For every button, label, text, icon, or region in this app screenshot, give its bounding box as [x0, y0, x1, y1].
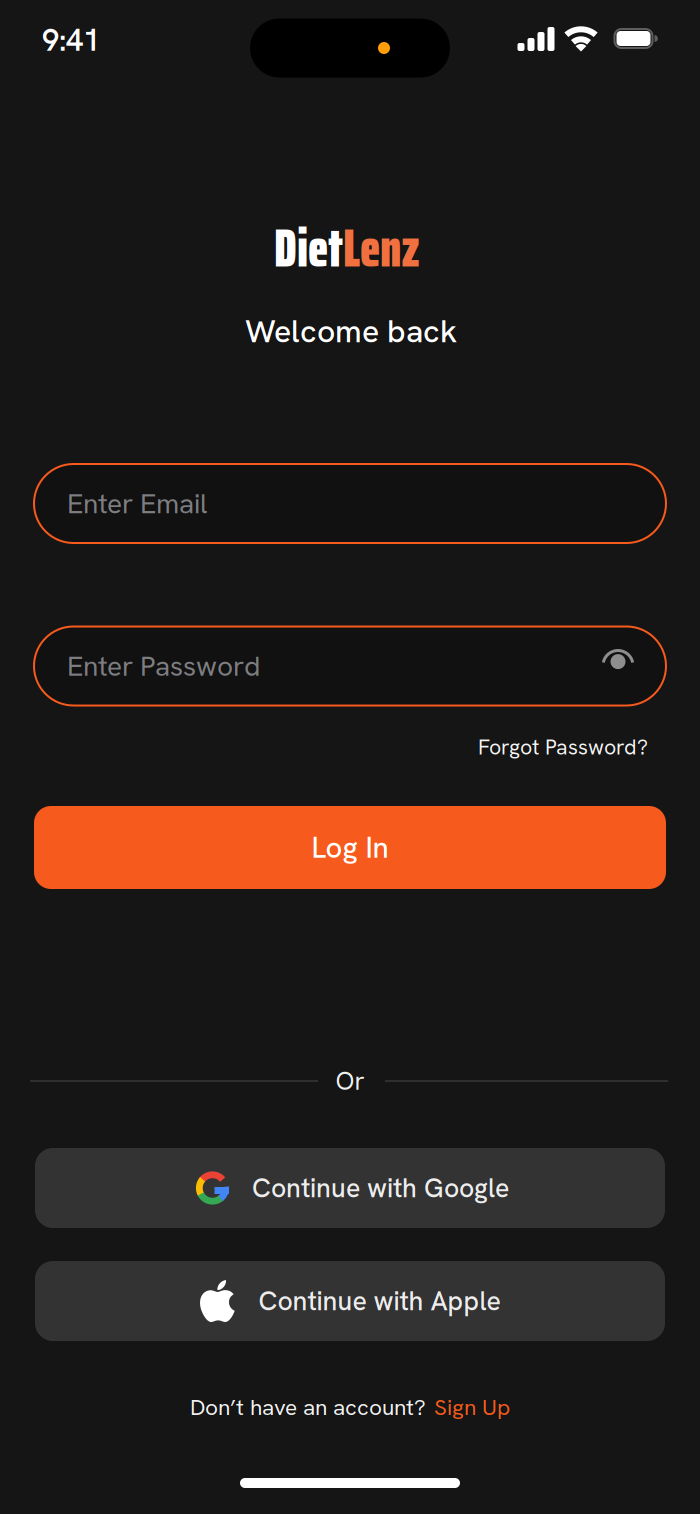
- button[interactable]: Continue with Apple: [35, 1261, 665, 1341]
- button[interactable]: Forgot Password?: [478, 733, 648, 760]
- staticText: Lenz: [343, 206, 420, 290]
- staticText: Continue with Google: [252, 1171, 509, 1205]
- staticText: Diet: [274, 206, 343, 290]
- staticText: 9:41: [42, 20, 100, 59]
- button[interactable]: Log In: [34, 806, 666, 889]
- staticText: Log In: [311, 829, 388, 866]
- staticText: Don’t have an account?: [190, 1393, 426, 1421]
- textField[interactable]: Enter Email: [33, 463, 667, 544]
- staticText: Enter Email: [67, 486, 207, 521]
- button[interactable]: Sign Up: [434, 1393, 510, 1421]
- secureTextField[interactable]: Enter Password: [33, 625, 667, 706]
- button[interactable]: Continue with Google: [35, 1148, 665, 1228]
- staticText: Welcome back: [245, 311, 457, 351]
- staticText: Forgot Password?: [478, 733, 648, 760]
- staticText: Continue with Apple: [258, 1284, 500, 1318]
- staticText: Or: [335, 1065, 364, 1097]
- staticText: Enter Password: [67, 648, 260, 684]
- button[interactable]: Show password: [597, 645, 639, 687]
- staticText: Sign Up: [434, 1393, 510, 1421]
